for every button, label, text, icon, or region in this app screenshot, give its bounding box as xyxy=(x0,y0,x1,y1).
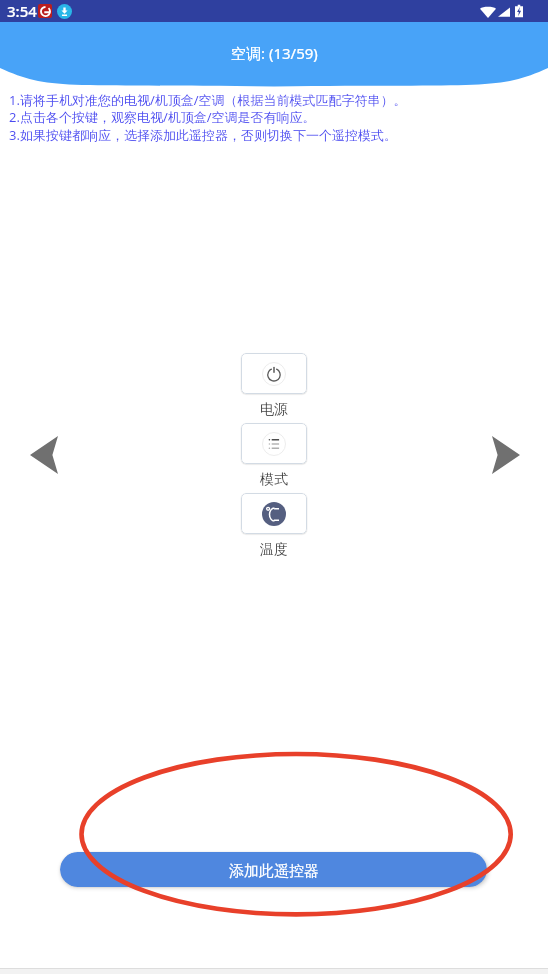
staticText: 添加此遥控器 xyxy=(229,862,319,881)
button[interactable]: Next remote xyxy=(483,429,529,481)
staticText: 3:54 xyxy=(7,1,37,21)
button[interactable] xyxy=(241,493,307,534)
staticText: 空调: (13/59) xyxy=(231,43,318,63)
button[interactable] xyxy=(241,423,307,464)
button[interactable]: 添加此遥控器 xyxy=(60,852,487,887)
staticText: 2.点击各个按键，观察电视/机顶盒/空调是否有响应。 xyxy=(9,108,316,126)
staticText: 模式 xyxy=(260,471,288,489)
staticText: 1.请将手机对准您的电视/机顶盒/空调（根据当前模式匹配字符串）。 xyxy=(9,91,407,109)
staticText: 电源 xyxy=(260,401,288,419)
staticText: 温度 xyxy=(260,541,288,559)
staticText: 3.如果按键都响应，选择添加此遥控器，否则切换下一个遥控模式。 xyxy=(9,126,397,144)
button[interactable] xyxy=(241,353,307,394)
button[interactable]: Previous remote xyxy=(21,429,67,481)
